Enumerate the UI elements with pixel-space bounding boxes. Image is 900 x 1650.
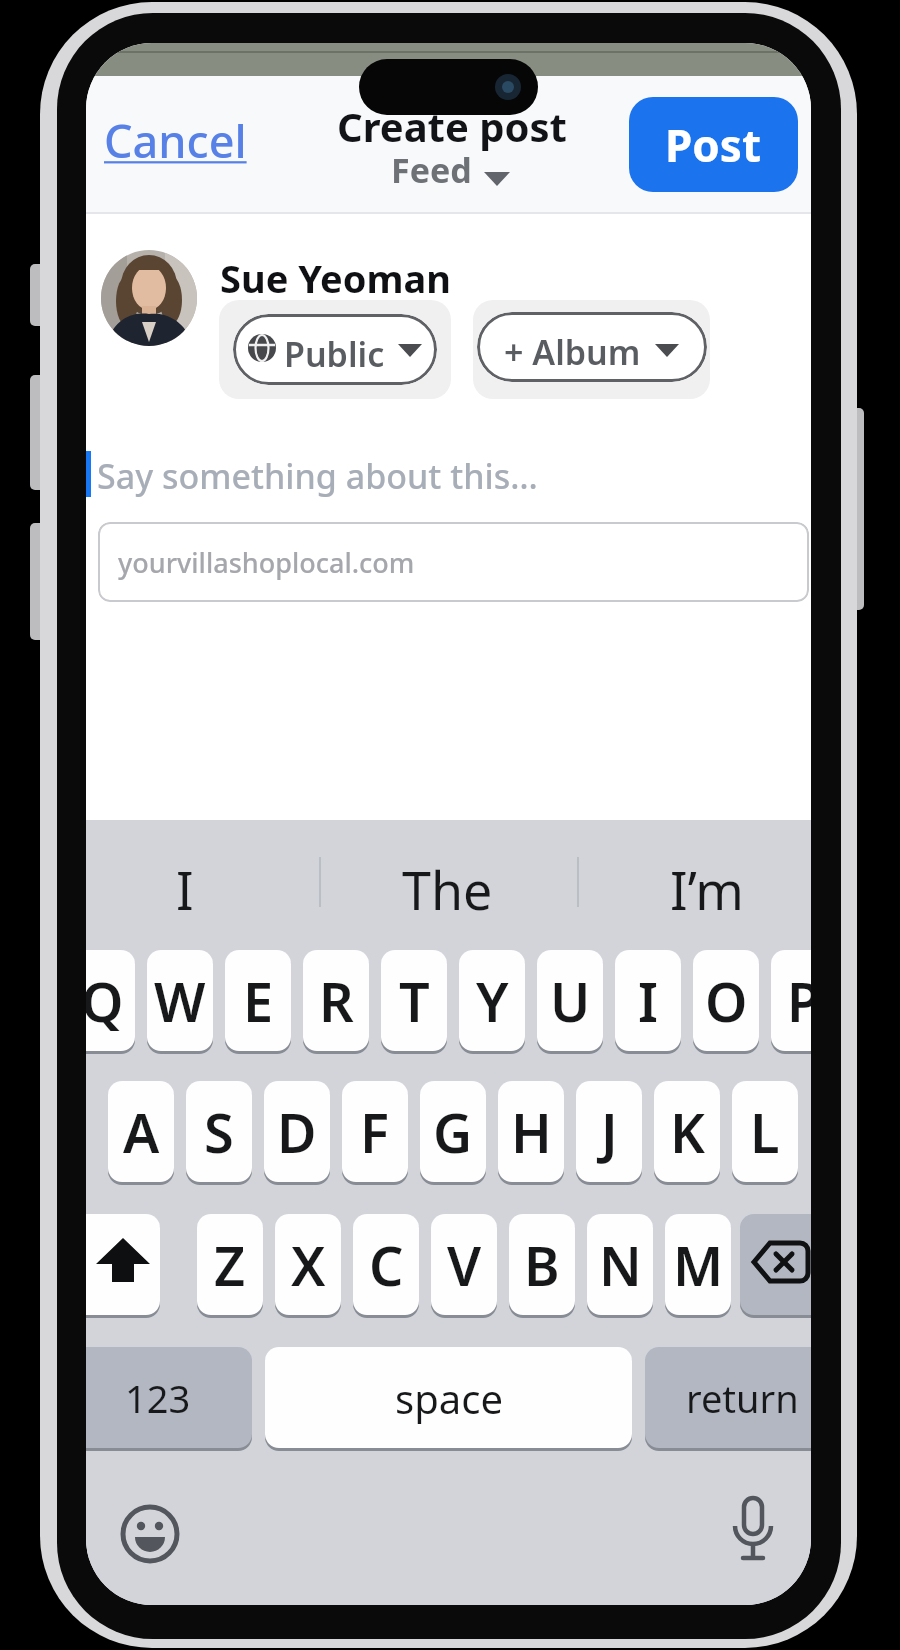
button[interactable]: T: [381, 950, 447, 1051]
button[interactable]: H: [498, 1081, 564, 1182]
button[interactable]: Y: [459, 950, 525, 1051]
staticText: return: [686, 1372, 799, 1424]
button[interactable]: space: [265, 1347, 632, 1448]
button[interactable]: Z: [197, 1214, 263, 1315]
button[interactable]: V: [431, 1214, 497, 1315]
button[interactable]: [86, 1214, 160, 1315]
staticText: Sue Yeoman: [220, 252, 452, 304]
button[interactable]: I: [615, 950, 681, 1051]
staticText: Public: [284, 331, 385, 377]
staticText: M: [673, 1228, 724, 1302]
button[interactable]: M: [665, 1214, 731, 1315]
button[interactable]: U: [537, 950, 603, 1051]
button[interactable]: X: [275, 1214, 341, 1315]
staticText: J: [601, 1095, 618, 1169]
staticText: Y: [476, 964, 509, 1038]
staticText: C: [369, 1228, 404, 1302]
staticText: D: [277, 1095, 317, 1169]
button[interactable]: return: [645, 1347, 811, 1448]
button[interactable]: Post: [629, 97, 798, 192]
staticText: U: [550, 964, 591, 1038]
button[interactable]: K: [654, 1081, 720, 1182]
button[interactable]: I’m: [557, 854, 811, 914]
button[interactable]: B: [509, 1214, 575, 1315]
staticText: The: [402, 854, 493, 914]
staticText: Post: [665, 115, 762, 175]
staticText: I’m: [670, 854, 744, 914]
staticText: K: [670, 1095, 705, 1169]
button[interactable]: Cancel: [104, 110, 247, 171]
button[interactable]: F: [342, 1081, 408, 1182]
button[interactable]: [473, 300, 710, 399]
button[interactable]: Q: [86, 950, 135, 1051]
staticText: R: [319, 964, 354, 1038]
button[interactable]: [740, 1214, 811, 1315]
staticText: P: [787, 964, 811, 1038]
staticText: V: [447, 1228, 482, 1302]
staticText: G: [433, 1095, 473, 1169]
staticText: yourvillashoplocal.com: [118, 544, 415, 581]
staticText: T: [399, 964, 430, 1038]
button[interactable]: R: [303, 950, 369, 1051]
staticText: I: [176, 854, 194, 914]
staticText: S: [204, 1095, 234, 1169]
button[interactable]: G: [420, 1081, 486, 1182]
button[interactable]: Feed: [281, 140, 581, 200]
button[interactable]: W: [147, 950, 213, 1051]
button[interactable]: 123: [86, 1347, 252, 1448]
staticText: Q: [86, 964, 124, 1038]
button[interactable]: [219, 300, 451, 399]
button[interactable]: A: [108, 1081, 174, 1182]
staticText: Z: [214, 1228, 246, 1302]
staticText: L: [750, 1095, 780, 1169]
button[interactable]: J: [576, 1081, 642, 1182]
staticText: B: [524, 1228, 560, 1302]
button[interactable]: D: [264, 1081, 330, 1182]
staticText: F: [360, 1095, 390, 1169]
button[interactable]: The: [297, 854, 597, 914]
staticText: I: [638, 964, 658, 1038]
staticText: space: [395, 1371, 503, 1425]
button[interactable]: L: [732, 1081, 798, 1182]
staticText: X: [291, 1228, 326, 1302]
button[interactable]: E: [225, 950, 291, 1051]
staticText: H: [511, 1095, 552, 1169]
staticText: Create post: [337, 99, 567, 153]
staticText: E: [243, 964, 274, 1038]
button[interactable]: C: [353, 1214, 419, 1315]
staticText: A: [123, 1095, 160, 1169]
staticText: Say something about this…: [97, 453, 538, 499]
button[interactable]: yourvillashoplocal.com: [98, 522, 809, 602]
button[interactable]: I: [86, 854, 335, 914]
staticText: + Album: [504, 329, 641, 375]
staticText: O: [705, 964, 748, 1038]
button[interactable]: P: [771, 950, 811, 1051]
staticText: Feed: [391, 147, 472, 193]
button[interactable]: S: [186, 1081, 252, 1182]
button[interactable]: N: [587, 1214, 653, 1315]
staticText: W: [154, 964, 206, 1038]
button[interactable]: O: [693, 950, 759, 1051]
staticText: 123: [125, 1372, 191, 1424]
staticText: N: [599, 1228, 642, 1302]
